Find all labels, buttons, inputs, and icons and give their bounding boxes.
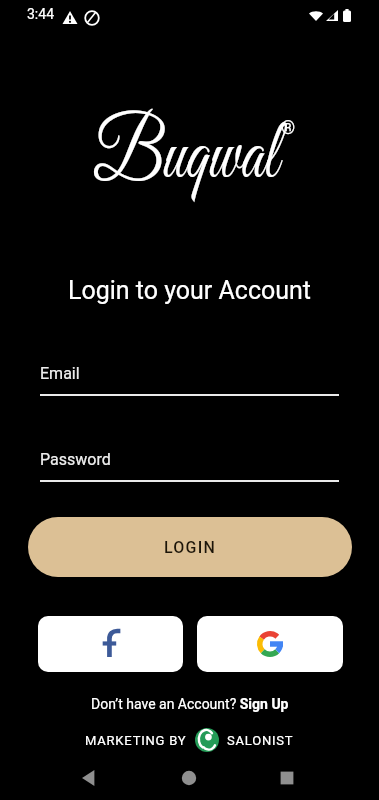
button[interactable]: Email bbox=[40, 358, 339, 396]
staticText: Email bbox=[40, 364, 80, 383]
button[interactable]: Password bbox=[40, 444, 339, 482]
button[interactable] bbox=[179, 768, 199, 788]
staticText: Buqwal bbox=[41, 104, 329, 212]
staticText: SALONIST bbox=[227, 733, 294, 748]
staticText: 3:44 bbox=[27, 6, 54, 22]
staticText: ® bbox=[281, 117, 296, 138]
button[interactable]: Don’t have an Account? Sign Up bbox=[0, 696, 379, 712]
button[interactable]: MARKETING BY bbox=[0, 726, 379, 754]
staticText: LOGIN bbox=[164, 538, 216, 557]
button[interactable] bbox=[78, 768, 98, 788]
button[interactable]: LOGIN bbox=[28, 517, 352, 577]
staticText: MARKETING BY bbox=[85, 733, 187, 748]
staticText: Password bbox=[40, 450, 111, 469]
button[interactable] bbox=[277, 768, 297, 788]
button[interactable] bbox=[197, 616, 343, 672]
button[interactable] bbox=[38, 616, 183, 672]
staticText: Don’t have an Account? Sign Up bbox=[91, 696, 289, 712]
staticText: Login to your Account bbox=[0, 276, 379, 305]
